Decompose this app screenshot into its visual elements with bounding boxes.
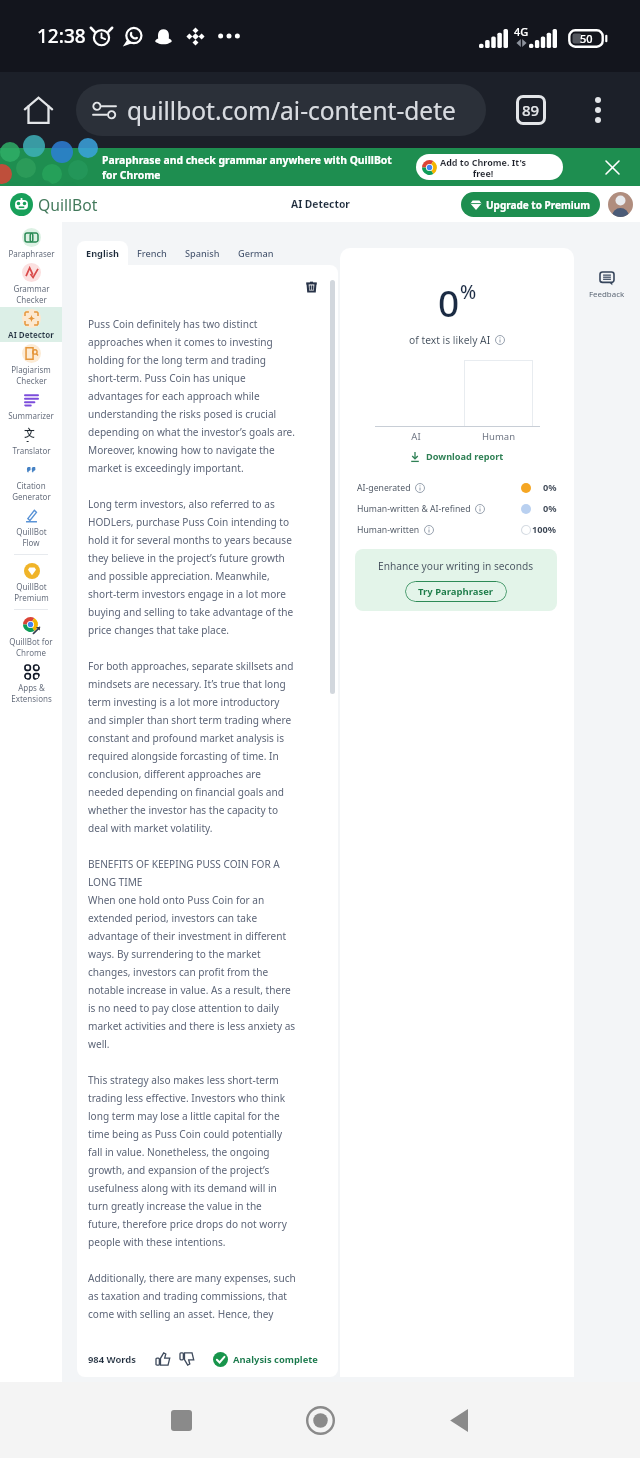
button[interactable]: QuillBot bbox=[10, 193, 98, 216]
button[interactable]: QuillBot bbox=[0, 504, 62, 550]
button[interactable]: Delete text bbox=[301, 276, 321, 296]
staticText: Paraphraser bbox=[8, 248, 55, 259]
button[interactable]: Summarizer bbox=[0, 388, 62, 423]
staticText: Human bbox=[457, 430, 540, 443]
staticText: Human-written & AI-refined bbox=[357, 503, 471, 515]
staticText: Download report bbox=[426, 450, 504, 463]
staticText: AI-generated bbox=[357, 482, 411, 494]
button[interactable]: More options bbox=[576, 88, 620, 132]
staticText: 984 Words bbox=[88, 1353, 136, 1366]
staticText: Generator bbox=[12, 491, 51, 502]
staticText: Enhance your writing in seconds bbox=[378, 559, 534, 573]
staticText: 0 bbox=[438, 277, 460, 327]
staticText: Flow bbox=[22, 537, 40, 548]
staticText: QuillBot for bbox=[9, 636, 53, 647]
button[interactable]: Home bbox=[288, 1388, 352, 1452]
staticText: Analysis complete bbox=[233, 1353, 318, 1366]
button[interactable]: Recents bbox=[149, 1388, 213, 1452]
button[interactable]: Thumbs down bbox=[177, 1349, 197, 1369]
staticText: 12:38 bbox=[37, 23, 86, 49]
staticText: AI Detector bbox=[291, 197, 350, 211]
staticText: Premium bbox=[14, 592, 49, 603]
staticText: Upgrade to Premium bbox=[486, 198, 590, 212]
button[interactable]: 文A bbox=[0, 423, 62, 458]
staticText: 50 bbox=[580, 31, 593, 46]
staticText: Grammar bbox=[13, 283, 50, 294]
staticText: Add to Chrome. It's free! bbox=[439, 156, 527, 179]
staticText: QuillBot bbox=[16, 581, 47, 592]
staticText: Extensions bbox=[11, 693, 52, 704]
staticText: Spanish bbox=[185, 247, 220, 260]
staticText: 0% bbox=[543, 481, 557, 494]
button[interactable]: Plagiarism bbox=[0, 342, 62, 388]
button[interactable]: Download report bbox=[340, 450, 574, 463]
button[interactable]: Add to Chrome. It's free! bbox=[416, 154, 563, 180]
button[interactable]: Home bbox=[14, 86, 62, 134]
staticText: French bbox=[137, 247, 167, 260]
staticText: Plagiarism bbox=[11, 364, 51, 375]
staticText: QuillBot bbox=[16, 526, 47, 537]
button[interactable]: Citation bbox=[0, 458, 62, 504]
staticText: Citation bbox=[16, 480, 46, 491]
staticText: Translator bbox=[12, 445, 51, 456]
button[interactable]: Back bbox=[427, 1388, 491, 1452]
staticText: QuillBot bbox=[38, 194, 98, 215]
button[interactable]: AI Detector bbox=[0, 307, 62, 342]
staticText: Chrome bbox=[16, 647, 46, 658]
button[interactable]: German bbox=[229, 241, 283, 265]
staticText: Human-written bbox=[357, 524, 420, 536]
staticText: % bbox=[460, 279, 477, 305]
staticText: English bbox=[86, 247, 119, 260]
button[interactable]: Paraphraser bbox=[0, 226, 62, 261]
button[interactable]: Close banner bbox=[598, 153, 626, 181]
button[interactable]: Thumbs up bbox=[153, 1349, 173, 1369]
button[interactable]: French bbox=[128, 241, 176, 265]
staticText: Summarizer bbox=[8, 410, 54, 421]
button[interactable]: Tabs bbox=[509, 88, 553, 132]
staticText: German bbox=[238, 247, 274, 260]
button[interactable]: Upgrade to Premium bbox=[461, 192, 600, 217]
staticText: Puss Coin definitely has two distinct ap… bbox=[88, 317, 296, 1321]
button[interactable]: QuillBot for bbox=[0, 614, 62, 660]
button[interactable]: Account bbox=[608, 192, 633, 217]
staticText: 100% bbox=[532, 523, 557, 536]
button[interactable]: QuillBot bbox=[0, 559, 62, 605]
staticText: 4G bbox=[514, 24, 529, 39]
staticText: quillbot.com/ai-content-dete bbox=[127, 94, 456, 127]
staticText: Paraphrase and check grammar anywhere wi… bbox=[102, 153, 406, 182]
staticText: Try Paraphraser bbox=[418, 585, 494, 598]
button[interactable]: Apps & bbox=[0, 660, 62, 706]
staticText: of text is likely AI bbox=[409, 333, 491, 347]
staticText: Apps & bbox=[18, 682, 45, 693]
button[interactable]: Grammar bbox=[0, 261, 62, 307]
button[interactable]: Spanish bbox=[176, 241, 229, 265]
button[interactable]: English bbox=[77, 241, 128, 265]
button[interactable]: Feedback bbox=[586, 269, 628, 303]
staticText: Feedback bbox=[589, 289, 625, 300]
staticText: AI bbox=[375, 430, 457, 443]
staticText: Checker bbox=[16, 375, 47, 386]
button[interactable]: Try Paraphraser bbox=[405, 581, 507, 602]
staticText: Checker bbox=[16, 294, 47, 305]
button[interactable]: quillbot.com/ai-content-dete bbox=[76, 84, 486, 136]
staticText: 文A bbox=[24, 427, 39, 442]
staticText: AI Detector bbox=[8, 329, 54, 340]
staticText: 89 bbox=[522, 100, 540, 120]
staticText: 0% bbox=[543, 502, 557, 515]
